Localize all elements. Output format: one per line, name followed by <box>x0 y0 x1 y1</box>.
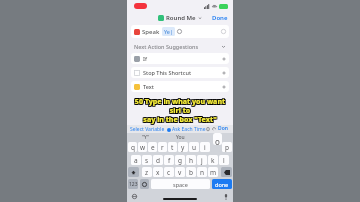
staticText: Next Action Suggestions <box>134 43 199 50</box>
button[interactable]: b <box>186 167 196 177</box>
button[interactable]: u <box>189 142 199 152</box>
button[interactable]: o <box>211 142 221 152</box>
button[interactable]: x <box>153 167 163 177</box>
staticText: 50 Type in what you want siri to say in … <box>129 97 229 124</box>
staticText: 50 Type in what you want siri to say in … <box>131 98 231 125</box>
button[interactable]: k <box>208 155 218 165</box>
staticText: Ask Each Time <box>172 126 206 133</box>
button[interactable]: "Y" <box>127 133 163 141</box>
button[interactable]: Stop This Shortcut <box>131 67 229 78</box>
staticText: v <box>178 168 182 177</box>
staticText: Done <box>212 14 228 22</box>
staticText: o <box>215 136 220 145</box>
staticText: k <box>211 156 215 165</box>
staticText: f <box>168 156 171 165</box>
staticText: Yo <box>213 134 219 141</box>
button[interactable]: Done <box>218 125 230 133</box>
button[interactable]: v <box>175 167 185 177</box>
button[interactable]: Yo <box>198 133 233 141</box>
staticText: 50 Type in what you want siri to say in … <box>130 98 230 125</box>
button[interactable]: r <box>158 142 167 152</box>
staticText: j <box>201 156 203 165</box>
staticText: n <box>200 168 205 177</box>
button[interactable]: Add action <box>222 57 226 61</box>
button[interactable]: i <box>200 142 210 152</box>
staticText: y <box>181 143 185 152</box>
button[interactable]: t <box>168 142 177 152</box>
staticText: done <box>215 181 229 188</box>
button[interactable]: g <box>175 155 185 165</box>
button[interactable]: h <box>186 155 196 165</box>
staticText: p <box>225 143 229 152</box>
staticText: w <box>140 143 146 152</box>
button[interactable]: Shift <box>128 167 139 177</box>
staticText: 50 Type in what you want siri to say in … <box>129 98 229 125</box>
staticText: r <box>161 143 164 152</box>
staticText: 50 Type in what you want siri to say in … <box>129 96 229 123</box>
button[interactable]: j <box>197 155 207 165</box>
button[interactable]: Dictate <box>224 194 228 200</box>
button[interactable]: Change keyboard <box>132 194 137 199</box>
button[interactable]: Done <box>211 13 229 23</box>
staticText: 123 <box>129 181 138 188</box>
button[interactable]: z <box>142 167 152 177</box>
button[interactable]: Ask Each Time <box>167 126 206 133</box>
staticText: 50 Type in what you want siri to say in … <box>130 97 230 124</box>
button[interactable]: Emoji <box>140 179 149 189</box>
staticText: 50 Type in what you want siri to say in … <box>131 96 231 123</box>
button[interactable]: d <box>153 155 163 165</box>
staticText: a <box>134 156 138 165</box>
staticText: Text <box>143 83 154 90</box>
staticText: Ye| <box>164 28 173 35</box>
button[interactable]: Undo <box>212 127 216 131</box>
button[interactable]: l <box>219 155 229 165</box>
staticText: q <box>131 143 135 152</box>
staticText: d <box>156 156 160 165</box>
staticText: 50 Type in what you want siri to say in … <box>131 97 231 124</box>
button[interactable]: q <box>128 142 137 152</box>
staticText: You <box>176 134 185 141</box>
button[interactable]: Add action <box>222 71 226 75</box>
staticText: Stop This Shortcut <box>143 69 191 76</box>
button[interactable]: Select Variable <box>130 126 165 133</box>
staticText: 50 Type in what you want siri to say in … <box>130 96 230 123</box>
button[interactable]: space <box>151 179 210 189</box>
button[interactable]: m <box>208 167 218 177</box>
staticText: x <box>156 168 160 177</box>
staticText: g <box>178 156 182 165</box>
staticText: t <box>171 143 174 152</box>
button[interactable]: c <box>164 167 174 177</box>
button[interactable]: Delete <box>221 167 232 177</box>
button[interactable]: done <box>212 179 232 189</box>
staticText: h <box>189 156 194 165</box>
button[interactable]: Next Action Suggestions <box>134 43 226 50</box>
button[interactable]: Text <box>131 81 229 92</box>
staticText: space <box>173 181 188 188</box>
button[interactable]: f <box>164 155 174 165</box>
staticText: o <box>214 143 218 152</box>
staticText: e <box>151 143 155 152</box>
button[interactable]: a <box>131 155 141 165</box>
staticText: c <box>167 168 171 177</box>
button[interactable]: 123 <box>128 179 138 189</box>
staticText: b <box>189 168 193 177</box>
button[interactable]: Add action <box>222 85 226 89</box>
button[interactable]: You <box>163 133 198 141</box>
button[interactable]: w <box>138 142 147 152</box>
button[interactable]: p <box>222 142 232 152</box>
staticText: l <box>223 156 225 165</box>
button[interactable]: s <box>142 155 152 165</box>
button[interactable]: Clipboard <box>206 127 210 131</box>
button[interactable]: Speak <box>131 25 229 38</box>
staticText: Speak <box>142 28 160 36</box>
staticText: "Y" <box>142 134 149 141</box>
staticText: m <box>210 168 217 177</box>
staticText: Done <box>218 125 230 133</box>
staticText: Round Me <box>166 14 196 22</box>
button[interactable]: If <box>131 53 229 64</box>
staticText: u <box>192 143 197 152</box>
button[interactable]: y <box>178 142 188 152</box>
button[interactable]: e <box>148 142 157 152</box>
button[interactable]: n <box>197 167 207 177</box>
staticText: s <box>145 156 149 165</box>
